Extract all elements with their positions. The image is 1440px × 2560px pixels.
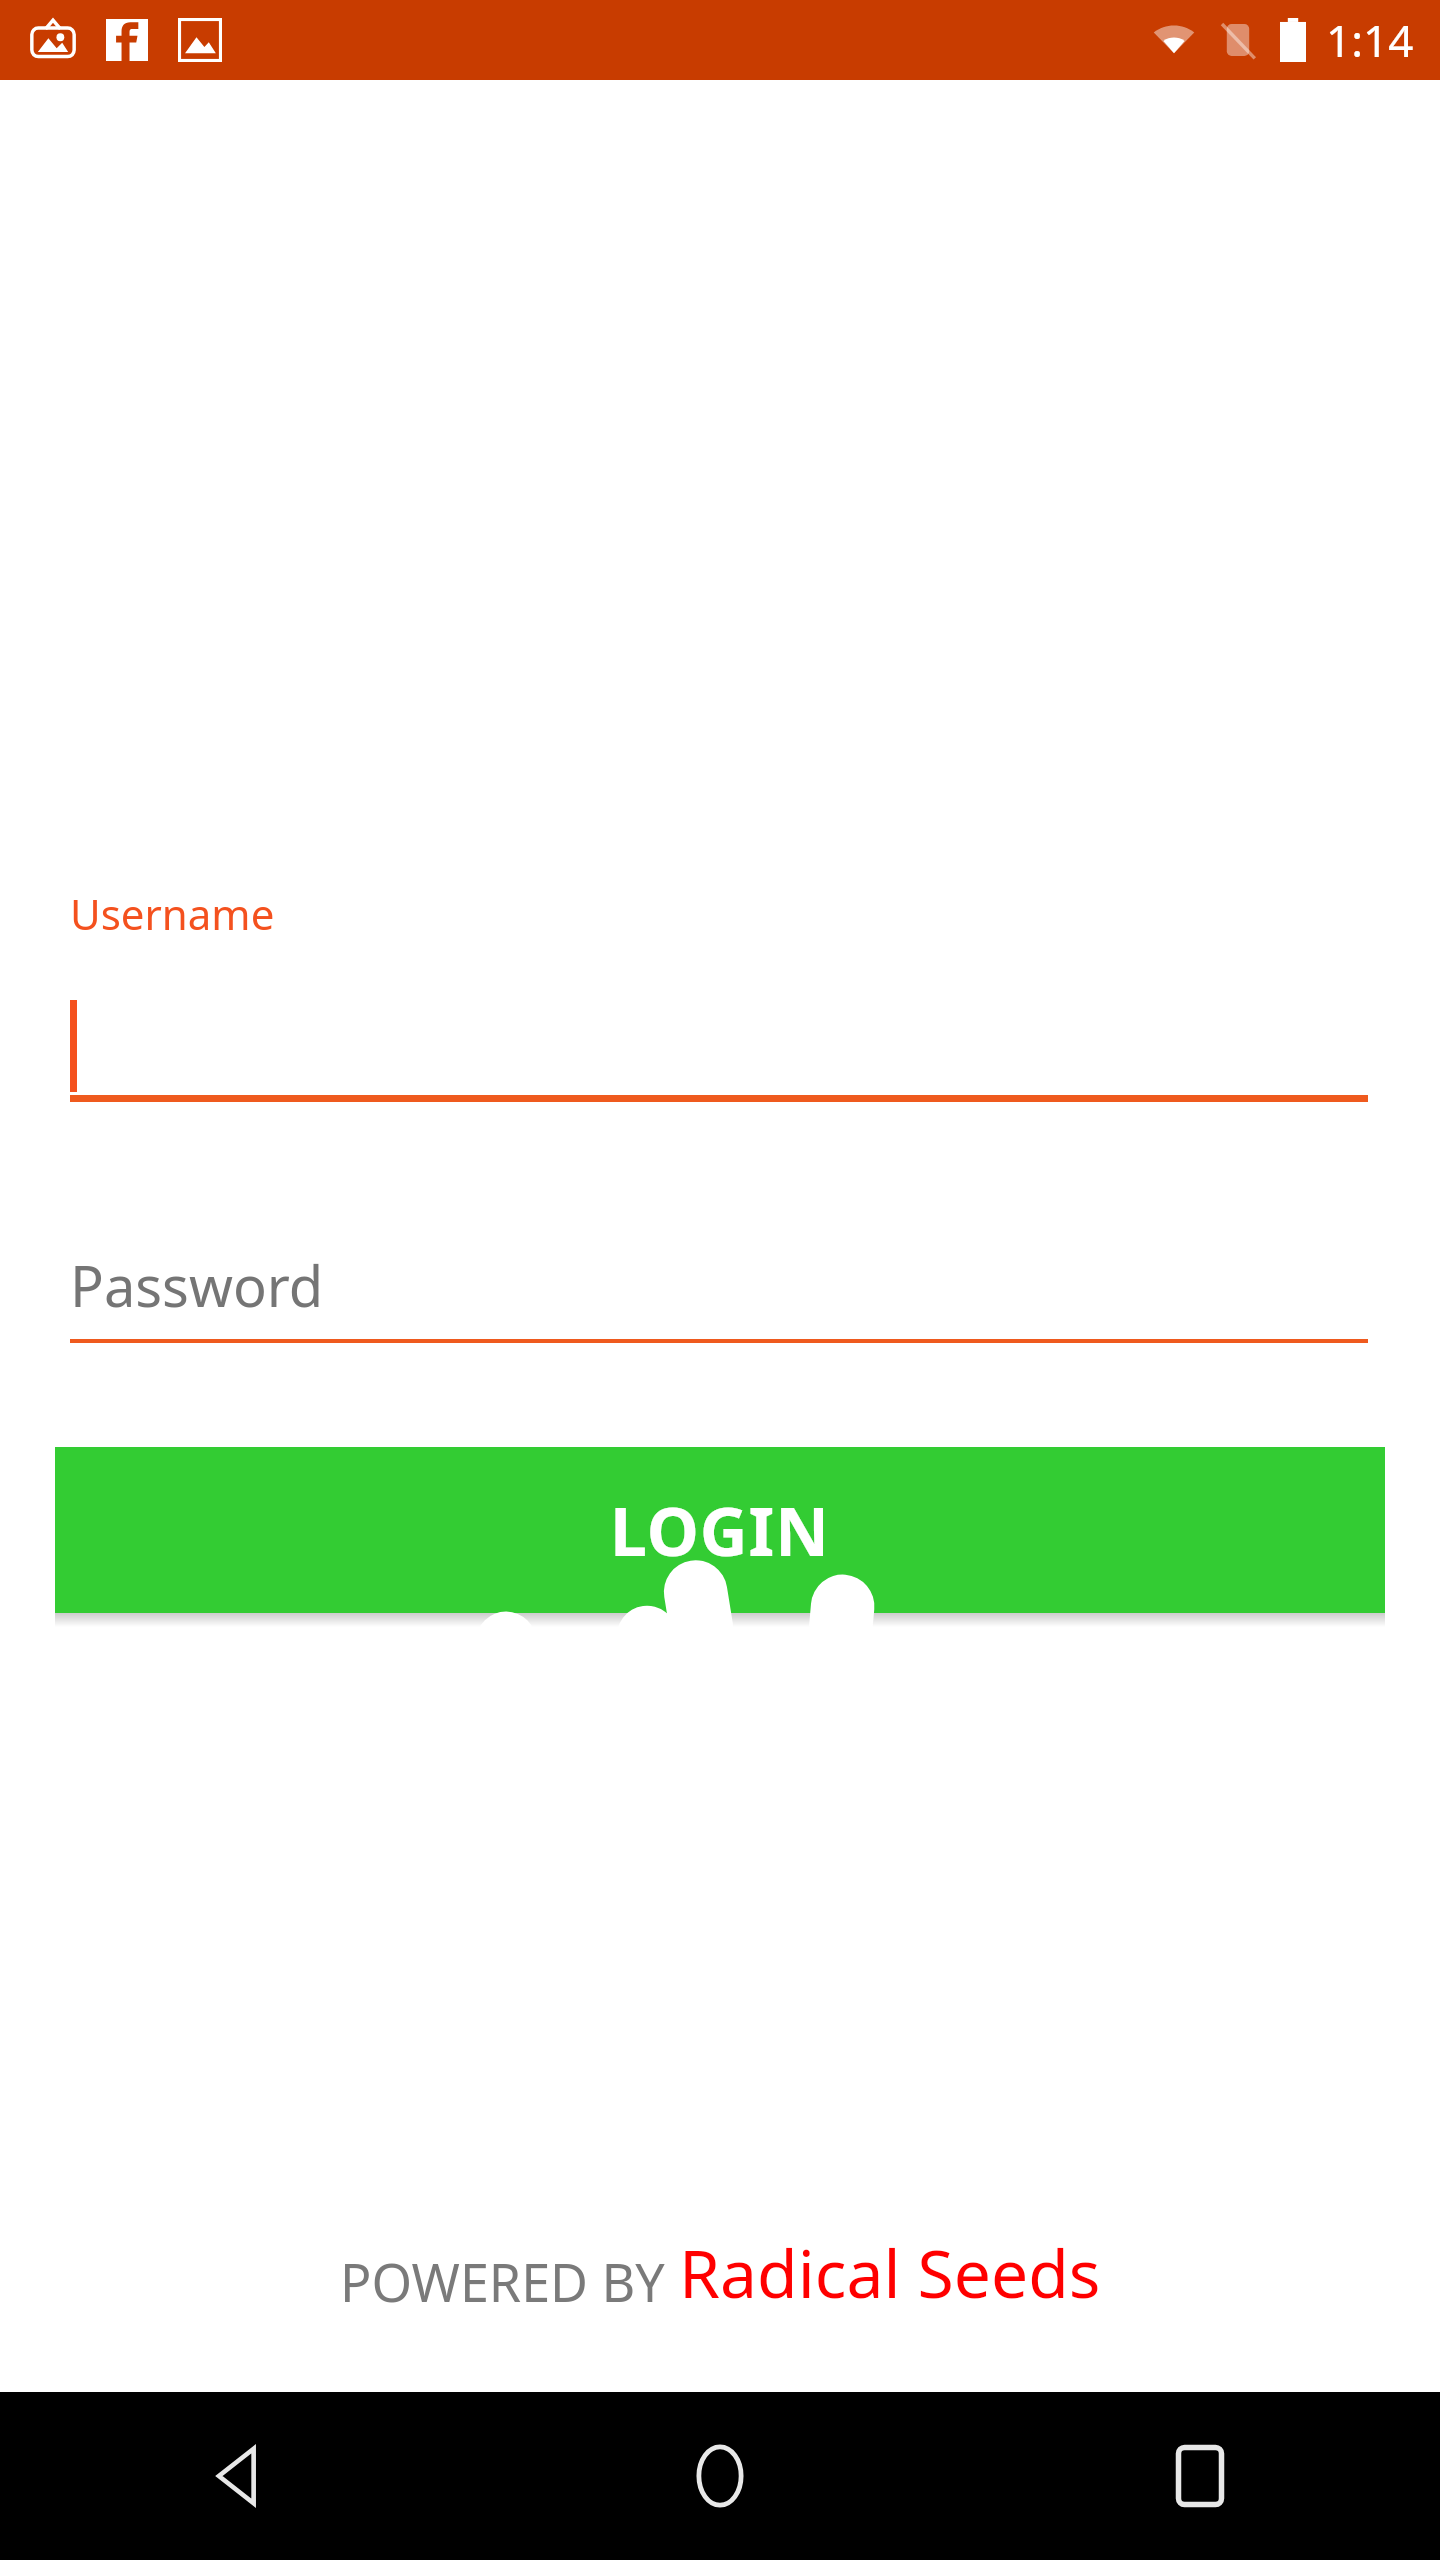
staticText: Password	[70, 1247, 324, 1323]
button[interactable]: LOGIN	[55, 1447, 1385, 1613]
button[interactable]: Back	[0, 2392, 480, 2560]
staticText: Username	[70, 885, 275, 942]
staticText: POWERED BY	[340, 2246, 679, 2317]
button[interactable]: Recent apps	[960, 2392, 1440, 2560]
button[interactable]: Password	[0, 1247, 1440, 1343]
staticText: Radical Seeds	[679, 2227, 1101, 2317]
button[interactable]: Username	[0, 885, 1440, 1102]
staticText: 1:14	[1326, 10, 1414, 70]
staticText: LOGIN	[610, 1485, 830, 1575]
button[interactable]: Home	[480, 2392, 960, 2560]
